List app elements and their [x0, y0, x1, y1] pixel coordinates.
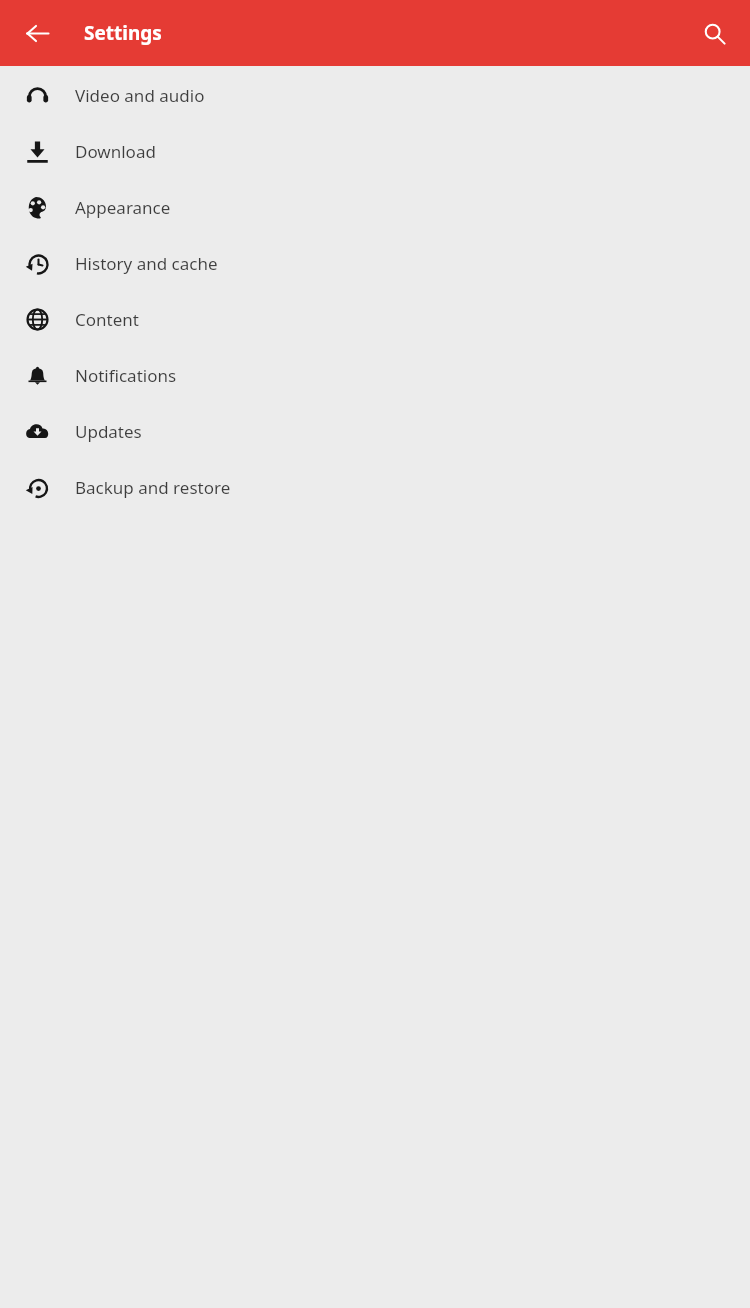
staticText: Updates: [75, 420, 142, 443]
button[interactable]: Back: [13, 9, 61, 57]
staticText: Download: [75, 140, 156, 163]
button[interactable]: Updates: [0, 403, 750, 459]
button[interactable]: Search: [690, 9, 738, 57]
button[interactable]: Notifications: [0, 347, 750, 403]
button[interactable]: Appearance: [0, 179, 750, 235]
staticText: Content: [75, 308, 139, 331]
button[interactable]: Download: [0, 123, 750, 179]
button[interactable]: History and cache: [0, 235, 750, 291]
button[interactable]: Video and audio: [0, 67, 750, 123]
staticText: Backup and restore: [75, 476, 231, 499]
staticText: Settings: [84, 20, 162, 46]
staticText: History and cache: [75, 252, 218, 275]
button[interactable]: Content: [0, 291, 750, 347]
staticText: Video and audio: [75, 84, 205, 107]
staticText: Appearance: [75, 196, 171, 219]
button[interactable]: Backup and restore: [0, 459, 750, 515]
staticText: Notifications: [75, 364, 177, 387]
